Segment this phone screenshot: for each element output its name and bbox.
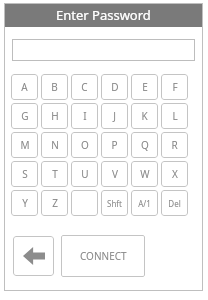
staticText: R <box>171 138 178 152</box>
staticText: T <box>52 167 58 181</box>
staticText: Enter Password <box>56 6 151 24</box>
staticText: V <box>112 167 118 181</box>
button[interactable] <box>71 190 98 216</box>
staticText: A <box>21 80 28 94</box>
button[interactable]: N <box>41 132 68 158</box>
staticText: D <box>111 80 119 94</box>
button[interactable]: S <box>11 161 38 187</box>
staticText: CONNECT <box>80 249 127 263</box>
button[interactable]: M <box>11 132 38 158</box>
button[interactable]: Y <box>11 190 38 216</box>
button[interactable]: A/1 <box>131 190 158 216</box>
staticText: S <box>22 167 28 181</box>
staticText: C <box>81 80 88 94</box>
button[interactable]: Del <box>161 190 188 216</box>
staticText: M <box>20 138 30 152</box>
button[interactable]: H <box>41 103 68 129</box>
staticText: Q <box>141 138 149 152</box>
staticText: Z <box>52 196 58 210</box>
staticText: Y <box>22 196 28 210</box>
staticText: E <box>142 80 148 94</box>
button[interactable]: R <box>161 132 188 158</box>
button[interactable]: L <box>161 103 188 129</box>
staticText: J <box>113 109 116 123</box>
button[interactable] <box>12 39 195 61</box>
button[interactable]: P <box>101 132 128 158</box>
staticText: Shft <box>107 198 122 209</box>
button[interactable]: K <box>131 103 158 129</box>
button[interactable]: Back <box>13 236 54 276</box>
staticText: K <box>141 109 148 123</box>
staticText: O <box>81 138 89 152</box>
staticText: X <box>172 167 178 181</box>
staticText: Del <box>168 198 181 209</box>
staticText: P <box>111 138 118 152</box>
button[interactable]: U <box>71 161 98 187</box>
staticText: N <box>51 138 59 152</box>
button[interactable]: A <box>11 74 38 100</box>
button[interactable]: B <box>41 74 68 100</box>
button[interactable]: Z <box>41 190 68 216</box>
staticText: L <box>172 109 178 123</box>
button[interactable]: V <box>101 161 128 187</box>
button[interactable]: O <box>71 132 98 158</box>
staticText: B <box>51 80 58 94</box>
button[interactable]: CONNECT <box>61 235 145 277</box>
staticText: I <box>83 109 87 123</box>
button[interactable]: W <box>131 161 158 187</box>
button[interactable]: C <box>71 74 98 100</box>
staticText: F <box>172 80 178 94</box>
button[interactable]: T <box>41 161 68 187</box>
button[interactable]: D <box>101 74 128 100</box>
button[interactable]: F <box>161 74 188 100</box>
staticText: G <box>21 109 29 123</box>
button[interactable]: X <box>161 161 188 187</box>
button[interactable]: Shft <box>101 190 128 216</box>
staticText: U <box>81 167 89 181</box>
staticText: H <box>51 109 59 123</box>
button[interactable]: J <box>101 103 128 129</box>
button[interactable]: Q <box>131 132 158 158</box>
button[interactable]: E <box>131 74 158 100</box>
staticText: W <box>140 167 150 181</box>
staticText: A/1 <box>138 198 151 209</box>
button[interactable]: G <box>11 103 38 129</box>
button[interactable]: I <box>71 103 98 129</box>
